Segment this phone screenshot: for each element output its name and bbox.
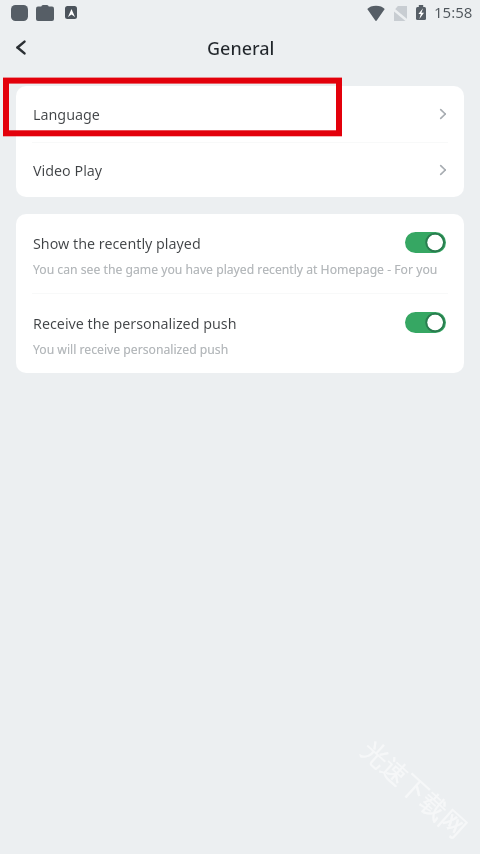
button[interactable]: Toggle Receive the personalized push [405, 312, 446, 333]
staticText: Show the recently played [33, 234, 201, 253]
staticText: You can see the game you have played rec… [33, 261, 438, 278]
button[interactable]: Language [16, 86, 464, 142]
staticText: General [207, 36, 275, 61]
button[interactable]: Toggle Show the recently played [405, 232, 446, 253]
button[interactable]: Receive the personalized push [16, 294, 464, 373]
button[interactable]: Show the recently played [16, 214, 464, 293]
staticText: 15:58 [434, 2, 473, 22]
button[interactable]: Back [0, 26, 42, 72]
staticText: You will receive personalized push [33, 341, 229, 358]
button[interactable]: Video Play [16, 143, 464, 197]
staticText: Receive the personalized push [33, 314, 237, 333]
staticText: Language [33, 105, 100, 124]
staticText: Video Play [33, 161, 103, 180]
